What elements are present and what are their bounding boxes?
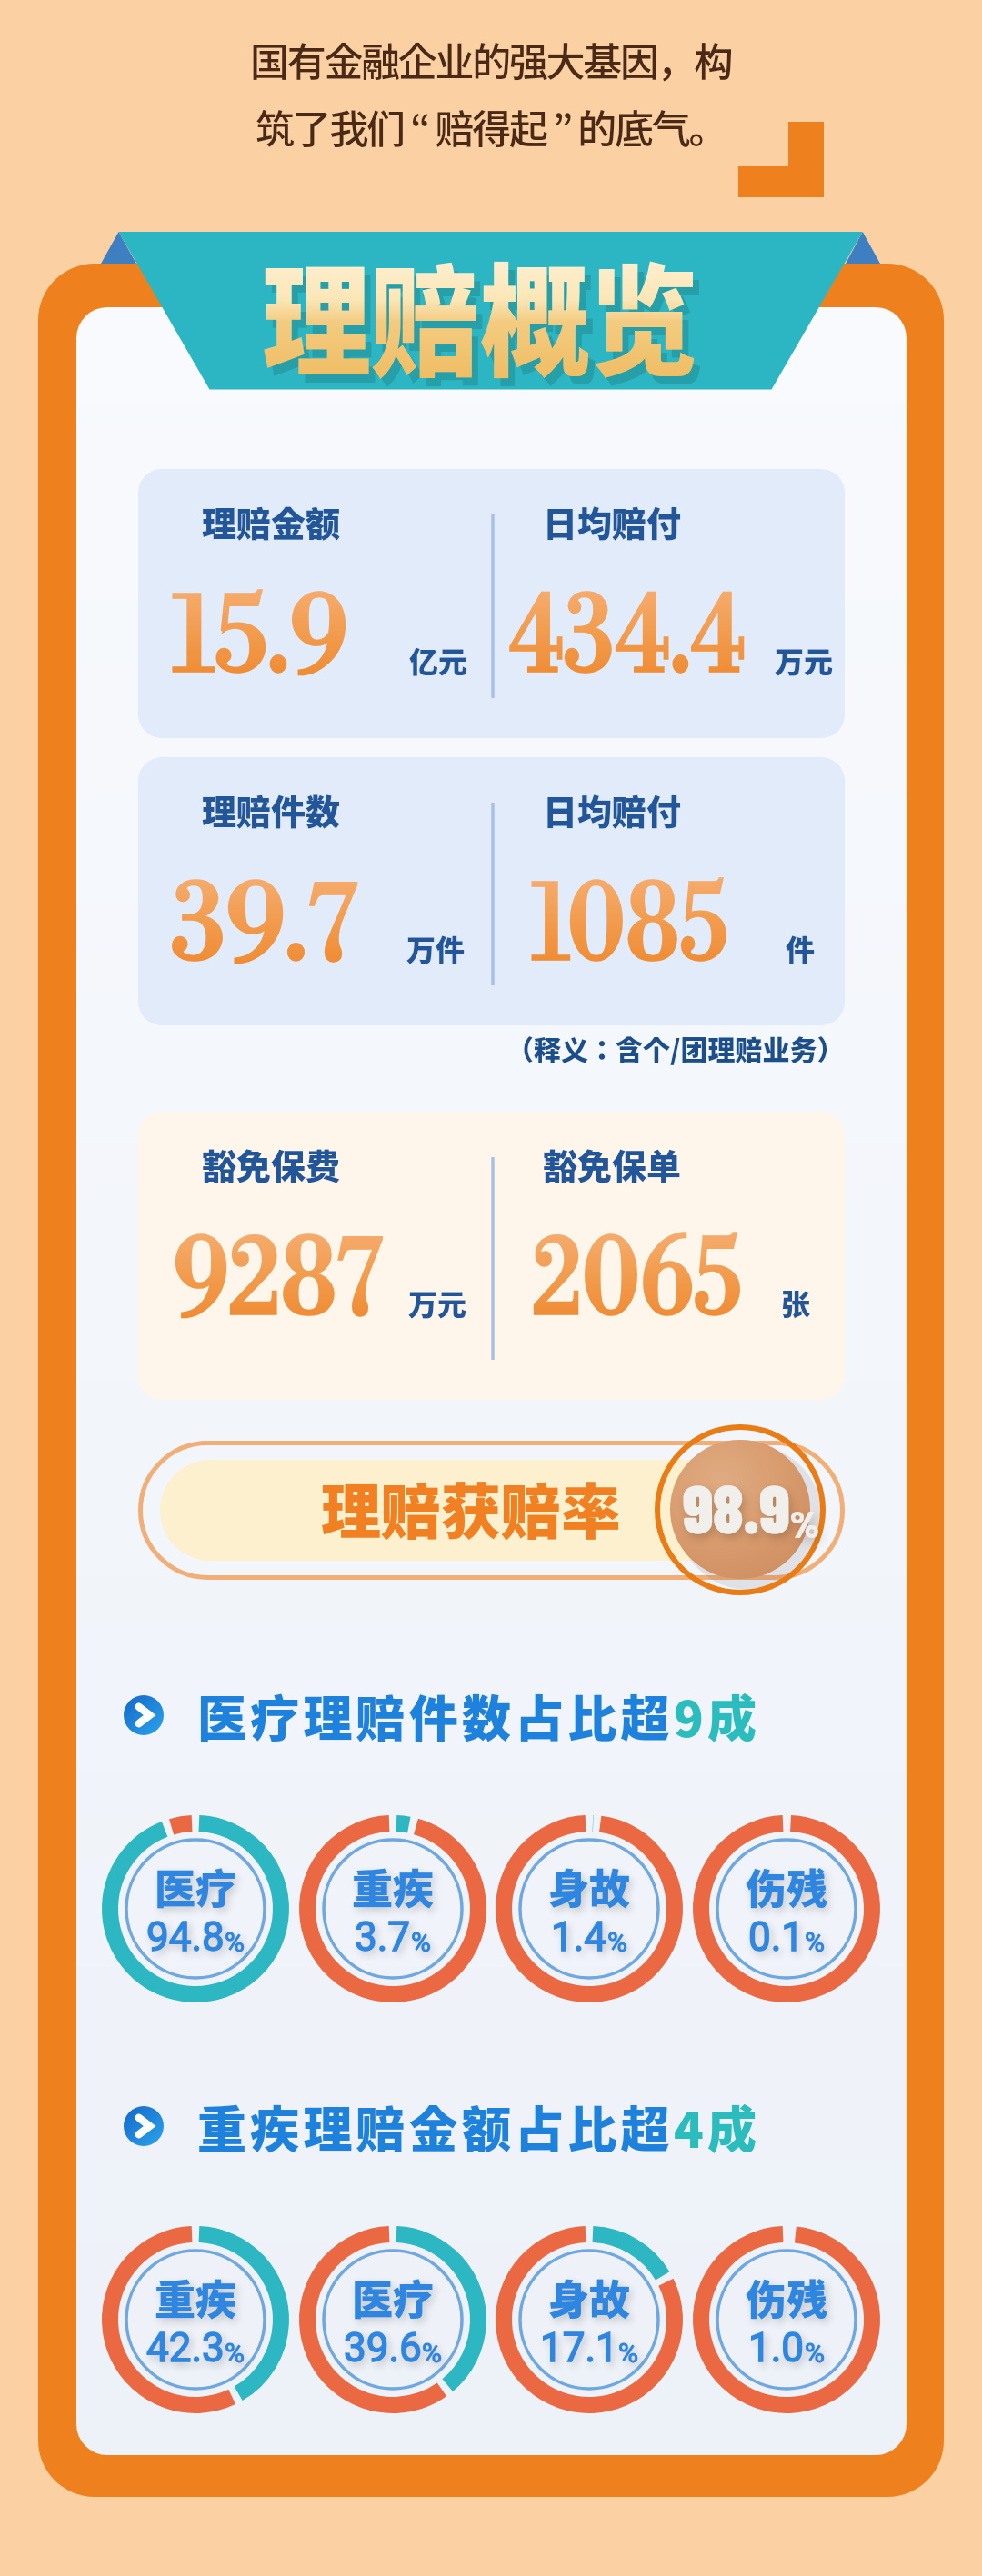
button[interactable]: 伤残 — [693, 2226, 880, 2413]
button[interactable]: Section marker — [124, 2091, 761, 2162]
staticText: 2065 — [532, 1215, 742, 1348]
staticText: 1.0 — [748, 2324, 805, 2371]
staticText: 重疾理赔金额占比超 — [197, 2091, 674, 2162]
button[interactable]: 医疗 — [102, 1815, 289, 2002]
button[interactable]: 伤残 — [693, 1815, 880, 2002]
button[interactable]: 豁免保费 — [138, 1112, 845, 1400]
staticText: 医疗理赔件数占比超 — [197, 1680, 674, 1751]
staticText: 理赔概览 — [268, 234, 705, 410]
staticText: 伤残 — [746, 1857, 828, 1916]
staticText: 9成 — [674, 1680, 761, 1751]
staticText: 万元 — [408, 1282, 467, 1323]
staticText: 理赔件数 — [202, 784, 341, 834]
staticText: 98.9 — [683, 1467, 790, 1547]
staticText: 件 — [786, 927, 816, 969]
button[interactable]: Section marker — [124, 1680, 761, 1751]
staticText: % — [225, 1926, 245, 1958]
staticText: 豁免保单 — [543, 1139, 682, 1189]
staticText: 万元 — [775, 639, 834, 681]
staticText: 39.7 — [171, 861, 357, 993]
staticText: 身故 — [548, 2268, 631, 2327]
staticText: 3.7 — [355, 1913, 411, 1961]
staticText: 4成 — [674, 2091, 761, 2162]
staticText: 万件 — [406, 927, 466, 969]
staticText: 42.3 — [146, 2324, 225, 2371]
staticText: 日均赔付 — [543, 784, 682, 834]
staticText: % — [805, 2337, 825, 2369]
staticText: 国有金融企业的强大基因，构 — [250, 31, 732, 87]
staticText: % — [411, 1926, 431, 1958]
staticText: 伤残 — [746, 2268, 828, 2327]
staticText: 15.9 — [173, 573, 348, 705]
staticText: 17.1 — [540, 2324, 618, 2371]
button[interactable]: 身故 — [496, 1815, 683, 2002]
staticText: 0.1 — [748, 1913, 805, 1961]
staticText: 434.4 — [509, 573, 745, 705]
staticText: 张 — [781, 1282, 811, 1323]
staticText: 理赔金额 — [202, 496, 341, 546]
other: Section marker — [124, 1695, 164, 1735]
staticText: % — [225, 2337, 245, 2369]
staticText: 医疗 — [155, 1857, 237, 1916]
staticText: 1.4 — [551, 1913, 607, 1961]
button[interactable]: 医疗 — [299, 2226, 486, 2413]
staticText: 9287 — [173, 1215, 382, 1348]
staticText: 重疾 — [155, 2268, 237, 2327]
staticText: 筑了我们 “ 赔得起 ” 的底气。 — [256, 98, 726, 155]
staticText: 94.8 — [146, 1913, 225, 1961]
staticText: 亿元 — [409, 639, 468, 681]
button[interactable]: 理赔金额 — [138, 469, 845, 738]
staticText: 日均赔付 — [543, 496, 682, 546]
button[interactable]: 身故 — [496, 2226, 683, 2413]
staticText: % — [422, 2337, 442, 2369]
staticText: 身故 — [548, 1857, 631, 1916]
staticText: 理赔概览 — [262, 225, 699, 402]
staticText: 重疾 — [352, 1857, 435, 1916]
staticText: （释义：含个/团理赔业务） — [506, 1028, 845, 1067]
staticText: 理赔获赔率 — [321, 1463, 621, 1551]
staticText: 39.6 — [344, 2324, 422, 2371]
staticText: % — [607, 1926, 627, 1958]
button[interactable]: 重疾 — [102, 2226, 289, 2413]
staticText: 1085 — [532, 861, 728, 993]
staticText: % — [805, 1926, 825, 1958]
other: Section marker — [124, 2106, 164, 2146]
staticText: 医疗 — [352, 2268, 435, 2327]
button[interactable]: 理赔件数 — [138, 757, 845, 1025]
button[interactable]: 理赔获赔率 — [138, 1441, 845, 1580]
staticText: % — [790, 1500, 819, 1545]
staticText: % — [618, 2337, 638, 2369]
staticText: 豁免保费 — [202, 1139, 341, 1189]
button[interactable]: 重疾 — [299, 1815, 486, 2002]
